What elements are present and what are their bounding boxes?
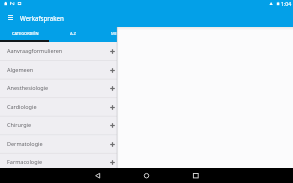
staticText: Cardiologie — [7, 103, 37, 110]
button[interactable]: Anesthesiologie — [0, 79, 117, 98]
button[interactable]: Back — [85, 168, 110, 183]
button[interactable]: Aanvraagformulieren — [0, 42, 117, 61]
button[interactable]: Open navigation drawer — [2, 9, 19, 26]
staticText: Werkafspraken — [20, 14, 64, 22]
button[interactable]: MEDICATIE — [97, 27, 117, 42]
button[interactable]: Algemeen — [0, 61, 117, 80]
button[interactable]: Recent apps — [183, 168, 208, 183]
button[interactable]: Dermatologie — [0, 135, 117, 154]
staticText: Anesthesiologie — [7, 84, 49, 91]
button[interactable]: Chirurgie — [0, 116, 117, 135]
staticText: Chirurgie — [7, 121, 32, 128]
button[interactable]: Cardiologie — [0, 98, 117, 117]
staticText: A-Z — [70, 31, 77, 36]
staticText: CATEGORIEËN — [12, 31, 39, 36]
staticText: Aanvraagformulieren — [7, 47, 63, 54]
button[interactable]: Gynaecologie — [0, 172, 117, 183]
button[interactable]: A-Z — [49, 27, 97, 42]
button[interactable]: Farmacologie — [0, 153, 117, 172]
staticText: Farmacologie — [7, 158, 43, 165]
staticText: 1:04 — [281, 0, 292, 7]
staticText: MEDICATIE — [111, 31, 117, 36]
staticText: Algemeen — [7, 66, 34, 73]
button[interactable]: CATEGORIEËN — [1, 27, 49, 42]
button[interactable]: Home — [134, 168, 159, 183]
staticText: Dermatologie — [7, 140, 43, 147]
